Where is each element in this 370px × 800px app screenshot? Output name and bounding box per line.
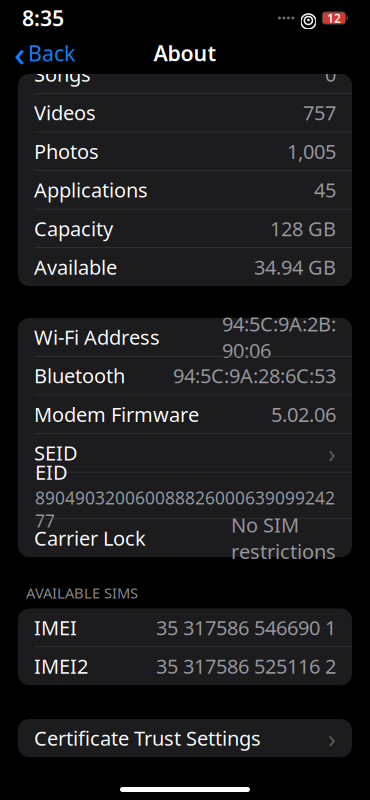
staticText: Certificate Trust Settings: [34, 725, 261, 751]
staticText: Wi-Fi Address: [34, 324, 160, 350]
staticText: 5.02.06: [271, 401, 336, 427]
staticText: 0: [325, 61, 336, 87]
staticText: 89049032006008882600063909924277: [35, 486, 335, 532]
staticText: 94:5C:9A:28:6C:53: [173, 362, 336, 389]
staticText: Carrier Lock: [34, 525, 146, 551]
button[interactable]: ‹: [4, 36, 85, 70]
staticText: IMEI2: [34, 653, 88, 679]
staticText: Bluetooth: [34, 362, 125, 389]
staticText: ›: [328, 436, 336, 470]
staticText: 35 317586 546690 1: [156, 614, 336, 641]
staticText: EID: [35, 459, 68, 485]
button[interactable]: SEID: [18, 434, 352, 472]
staticText: No SIM restrictions: [231, 511, 336, 564]
staticText: Back: [28, 39, 75, 67]
staticText: Photos: [34, 138, 99, 164]
staticText: AVAILABLE SIMS: [26, 583, 138, 602]
staticText: Videos: [34, 99, 96, 126]
staticText: Applications: [34, 176, 148, 203]
staticText: Capacity: [34, 215, 113, 242]
staticText: About: [153, 39, 216, 67]
staticText: ‹: [14, 30, 25, 76]
button[interactable]: Certificate Trust Settings: [18, 719, 352, 757]
staticText: 94:5C:9A:2B:90:06: [222, 310, 336, 363]
staticText: 757: [303, 99, 336, 126]
staticText: Modem Firmware: [34, 401, 199, 427]
staticText: Available: [34, 254, 117, 280]
staticText: 34.94 GB: [254, 254, 336, 280]
staticText: 45: [314, 176, 336, 203]
staticText: 8:35: [22, 4, 64, 32]
staticText: 128 GB: [270, 215, 336, 242]
staticText: 12: [327, 10, 341, 26]
staticText: SEID: [34, 439, 78, 466]
staticText: 35 317586 525116 2: [156, 653, 336, 679]
staticText: IMEI: [34, 614, 77, 641]
staticText: 1,005: [287, 138, 336, 164]
staticText: ›: [328, 721, 336, 755]
staticText: Songs: [34, 61, 91, 87]
